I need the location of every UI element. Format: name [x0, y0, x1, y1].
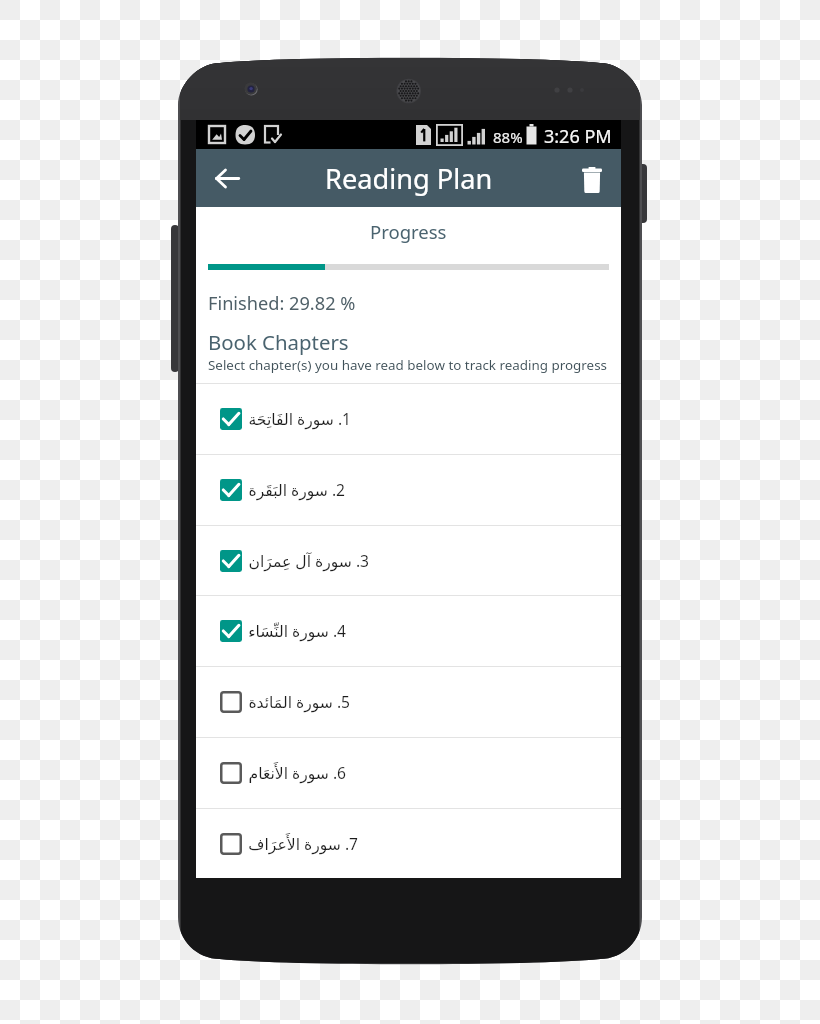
staticText: 5. سورة المَائدة [248, 691, 350, 712]
staticText: 2. سورة البَقَرة [248, 479, 345, 500]
staticText: Finished: 29.82 % [208, 291, 356, 316]
button[interactable]: 3. سورة آل عِمرَان [196, 525, 621, 596]
button[interactable]: Back [202, 149, 252, 207]
button[interactable]: Delete reading plan [563, 149, 621, 207]
button[interactable]: 1. سورة الفَاتِحَة [196, 383, 621, 454]
staticText: Select chapter(s) you have read below to… [208, 356, 607, 374]
staticText: Book Chapters [208, 328, 349, 356]
button[interactable]: 2. سورة البَقَرة [196, 454, 621, 525]
button[interactable]: 5. سورة المَائدة [196, 666, 621, 737]
staticText: Progress [370, 219, 447, 244]
button[interactable]: 6. سورة الأَنعَام [196, 737, 621, 808]
staticText: 1. سورة الفَاتِحَة [248, 408, 351, 429]
staticText: 3:26 PM [544, 124, 612, 149]
staticText: 4. سورة النِّسَاء [248, 620, 346, 641]
staticText: 3. سورة آل عِمرَان [248, 550, 369, 571]
staticText: 6. سورة الأَنعَام [248, 762, 346, 783]
button[interactable]: 7. سورة الأَعرَاف [196, 808, 621, 878]
button[interactable]: 4. سورة النِّسَاء [196, 595, 621, 666]
staticText: 7. سورة الأَعرَاف [248, 833, 358, 854]
staticText: 88% [493, 127, 523, 147]
staticText: Reading Plan [325, 160, 493, 197]
